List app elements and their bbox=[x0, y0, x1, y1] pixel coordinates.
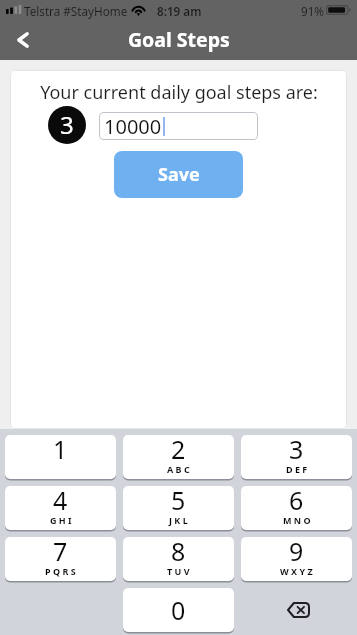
button[interactable]: 4 bbox=[5, 486, 116, 530]
staticText: W X Y Z bbox=[280, 565, 313, 577]
staticText: 6 bbox=[289, 483, 304, 517]
button[interactable]: 1 bbox=[5, 435, 116, 479]
button[interactable]: 2 bbox=[123, 435, 234, 479]
button[interactable]: 0 bbox=[123, 588, 234, 632]
staticText: 5 bbox=[171, 483, 186, 517]
staticText: 7 bbox=[53, 534, 68, 568]
button[interactable]: 10000 bbox=[99, 112, 258, 140]
staticText: D E F bbox=[286, 463, 308, 475]
staticText: Telstra #StayHome bbox=[24, 3, 128, 19]
button[interactable]: 7 bbox=[5, 537, 116, 581]
button[interactable]: Back bbox=[2, 26, 44, 60]
staticText: A B C bbox=[167, 463, 190, 475]
staticText: M N O bbox=[283, 514, 311, 526]
staticText: 4 bbox=[53, 483, 68, 517]
button[interactable]: 5 bbox=[123, 486, 234, 530]
staticText: 3 bbox=[60, 108, 74, 141]
button[interactable]: 6 bbox=[241, 486, 352, 530]
staticText: 10000 bbox=[104, 113, 162, 140]
button[interactable]: Delete bbox=[241, 588, 352, 632]
staticText: 0 bbox=[171, 593, 186, 627]
staticText: 8:19 am bbox=[157, 3, 202, 19]
staticText: T U V bbox=[167, 565, 190, 577]
staticText: 8 bbox=[171, 534, 186, 568]
staticText: 2 bbox=[171, 432, 186, 466]
button[interactable]: Save bbox=[114, 151, 243, 198]
staticText: Save bbox=[158, 162, 200, 187]
staticText: Your current daily goal steps are: bbox=[40, 80, 318, 105]
staticText: J K L bbox=[169, 514, 188, 526]
staticText: P Q R S bbox=[45, 565, 76, 577]
staticText: G H I bbox=[50, 514, 72, 526]
staticText: 1 bbox=[53, 432, 68, 466]
staticText: 3 bbox=[289, 432, 304, 466]
staticText: Goal Steps bbox=[128, 26, 230, 53]
staticText: 91% bbox=[301, 3, 325, 19]
staticText: 9 bbox=[289, 534, 304, 568]
button[interactable]: 3 bbox=[241, 435, 352, 479]
button[interactable]: 8 bbox=[123, 537, 234, 581]
button[interactable]: 9 bbox=[241, 537, 352, 581]
